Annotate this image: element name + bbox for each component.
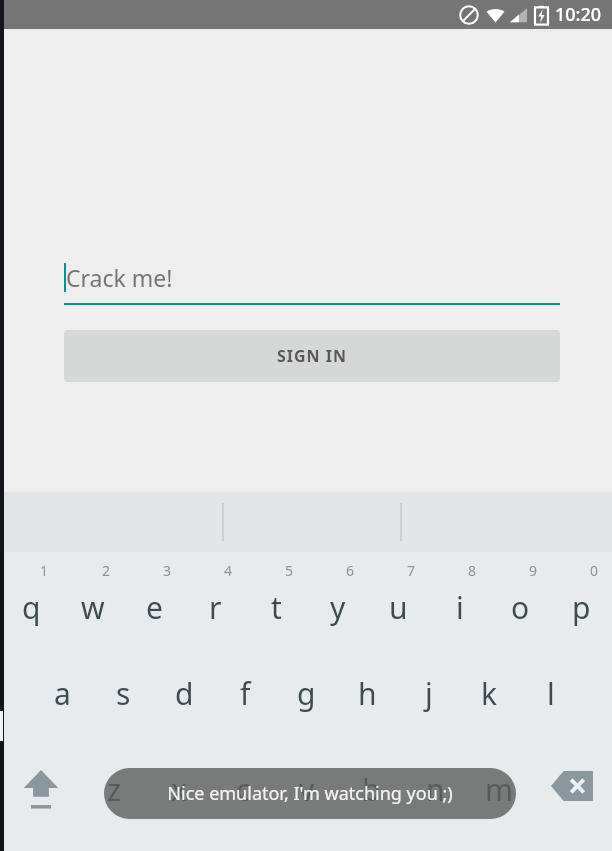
button[interactable]: j: [398, 647, 459, 739]
button[interactable]: x: [147, 739, 211, 851]
button[interactable]: v: [275, 739, 339, 851]
staticText: 5: [285, 561, 294, 580]
button[interactable]: c: [211, 739, 275, 851]
staticText: a: [54, 673, 71, 714]
staticText: l: [547, 673, 555, 714]
staticText: 4: [224, 561, 233, 580]
button[interactable]: g: [276, 647, 337, 739]
staticText: d: [175, 673, 194, 714]
staticText: q: [22, 587, 41, 628]
staticText: 0: [590, 561, 599, 580]
button[interactable]: f: [215, 647, 276, 739]
staticText: 7: [407, 561, 416, 580]
button[interactable]: d: [154, 647, 215, 739]
staticText: h: [358, 673, 377, 714]
button[interactable]: 9: [490, 552, 551, 647]
button[interactable]: 4: [185, 552, 246, 647]
staticText: z: [107, 769, 122, 810]
staticText: Nice emulator, I'm watching you ;): [167, 781, 453, 806]
button[interactable]: m: [467, 739, 531, 851]
staticText: w: [81, 587, 105, 628]
staticText: b: [362, 769, 381, 810]
button[interactable]: h: [337, 647, 398, 739]
button[interactable]: 2: [62, 552, 124, 647]
button[interactable]: s: [93, 647, 154, 739]
staticText: m: [485, 769, 514, 810]
button[interactable]: 6: [307, 552, 368, 647]
staticText: n: [426, 769, 445, 810]
staticText: 9: [529, 561, 538, 580]
staticText: u: [389, 587, 408, 628]
staticText: i: [456, 587, 464, 628]
button[interactable]: 1: [0, 552, 62, 647]
staticText: j: [425, 673, 433, 714]
button[interactable]: 0: [551, 552, 612, 647]
staticText: v: [299, 769, 315, 810]
staticText: Crack me!: [66, 262, 173, 293]
button[interactable]: l: [520, 647, 581, 739]
staticText: SIGN IN: [277, 345, 348, 367]
button[interactable]: k: [459, 647, 520, 739]
staticText: 1: [40, 561, 49, 580]
staticText: 6: [346, 561, 355, 580]
button[interactable]: 7: [368, 552, 429, 647]
staticText: 2: [102, 561, 111, 580]
staticText: g: [297, 673, 316, 714]
button[interactable]: 8: [429, 552, 490, 647]
button[interactable]: a: [32, 647, 93, 739]
staticText: 3: [163, 561, 172, 580]
button[interactable]: 3: [124, 552, 185, 647]
staticText: 10:20: [555, 2, 602, 27]
button[interactable]: z: [82, 739, 147, 851]
staticText: x: [171, 769, 187, 810]
staticText: 8: [468, 561, 477, 580]
button[interactable]: Crack me!: [64, 253, 560, 305]
button[interactable]: SIGN IN: [64, 330, 560, 382]
staticText: k: [481, 673, 498, 714]
staticText: s: [116, 673, 131, 714]
button[interactable]: Backspace: [531, 739, 612, 851]
staticText: r: [209, 587, 222, 628]
staticText: t: [271, 587, 282, 628]
button[interactable]: b: [339, 739, 403, 851]
staticText: p: [572, 587, 591, 628]
button[interactable]: 5: [246, 552, 307, 647]
button[interactable]: Shift: [0, 739, 82, 851]
staticText: o: [511, 587, 530, 628]
button[interactable]: n: [403, 739, 467, 851]
staticText: c: [236, 769, 251, 810]
staticText: y: [330, 587, 346, 628]
staticText: e: [146, 587, 163, 628]
staticText: f: [240, 673, 251, 714]
